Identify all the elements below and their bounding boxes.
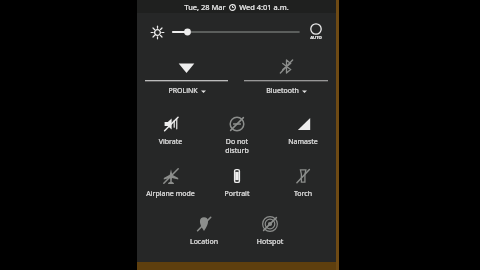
button[interactable]: Bluetooth	[244, 51, 328, 101]
button[interactable]: Location	[173, 209, 235, 257]
staticText: PROLiNK	[168, 86, 198, 96]
button[interactable]: Hotspot	[239, 209, 301, 257]
button[interactable]: Brightness	[147, 22, 167, 42]
button[interactable]	[173, 22, 299, 42]
staticText: Portrait	[206, 189, 268, 199]
button[interactable]: Namaste	[272, 109, 334, 161]
staticText: Airplane mode	[139, 189, 202, 199]
staticText: Do not disturb	[206, 137, 268, 155]
button[interactable]: Airplane mode	[139, 161, 202, 209]
button[interactable]: Do not disturb	[206, 109, 268, 161]
button[interactable]: Auto brightness	[306, 23, 326, 41]
staticText: Hotspot	[239, 237, 301, 247]
staticText: Wed 4:01 a.m.	[239, 2, 289, 12]
staticText: Namaste	[272, 137, 334, 147]
staticText: AUTO	[310, 35, 322, 41]
staticText: Torch	[272, 189, 334, 199]
staticText: Bluetooth	[266, 86, 299, 96]
button[interactable]: Vibrate	[139, 109, 202, 161]
button[interactable]: Torch	[272, 161, 334, 209]
staticText: Tue, 28 Mar	[184, 2, 226, 12]
button[interactable]: PROLiNK	[145, 51, 228, 101]
button[interactable]: Portrait	[206, 161, 268, 209]
staticText: Vibrate	[139, 137, 202, 147]
staticText: Location	[173, 237, 235, 247]
